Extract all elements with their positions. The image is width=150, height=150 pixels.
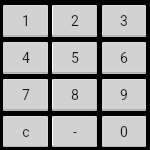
button[interactable]: 2 (52, 5, 97, 37)
staticText: 0 (120, 124, 128, 140)
staticText: 3 (120, 13, 128, 29)
button[interactable]: 9 (102, 79, 146, 111)
button[interactable]: 0 (102, 116, 146, 147)
staticText: - (73, 124, 77, 140)
staticText: 4 (22, 50, 30, 66)
staticText: c (22, 124, 30, 140)
button[interactable]: 5 (52, 42, 97, 74)
button[interactable]: 6 (102, 42, 146, 74)
button[interactable]: 8 (52, 79, 97, 111)
button[interactable]: c (3, 116, 48, 147)
button[interactable]: - (52, 116, 97, 147)
button[interactable]: 7 (3, 79, 48, 111)
staticText: 2 (71, 13, 79, 29)
staticText: 7 (22, 87, 30, 103)
button[interactable]: 1 (3, 5, 48, 37)
staticText: 1 (22, 13, 30, 29)
button[interactable]: 4 (3, 42, 48, 74)
staticText: 8 (71, 87, 79, 103)
staticText: 5 (71, 50, 79, 66)
staticText: 6 (120, 50, 128, 66)
staticText: 9 (120, 87, 128, 103)
button[interactable]: 3 (102, 5, 146, 37)
